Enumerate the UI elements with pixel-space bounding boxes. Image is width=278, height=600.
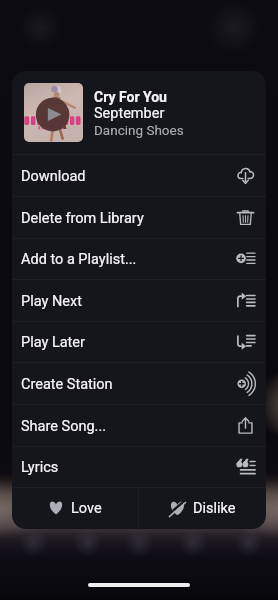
other: Play Later (236, 332, 255, 351)
button[interactable]: Lyrics (12, 446, 266, 487)
button[interactable]: Delete from Library (12, 196, 266, 238)
staticText: Lyrics (21, 459, 59, 476)
button[interactable]: Share Song... (12, 404, 266, 446)
staticText: September (94, 105, 165, 122)
staticText: Delete from Library (21, 210, 144, 227)
staticText: Play Next (21, 293, 82, 310)
staticText: Add to a Playlist... (21, 251, 137, 268)
button[interactable]: Create Station (12, 362, 266, 404)
button[interactable]: Dislike (139, 487, 266, 529)
staticText: Love (71, 500, 102, 517)
button[interactable]: Play Next (12, 279, 266, 321)
staticText: Dancing Shoes (94, 122, 184, 138)
other: Create Station (236, 374, 255, 393)
button[interactable]: Play Later (12, 321, 266, 362)
button[interactable]: Add to a Playlist... (12, 238, 266, 279)
staticText: Share Song... (21, 418, 107, 435)
other: Add to a Playlist (236, 249, 255, 268)
other: Lyrics (236, 457, 255, 476)
staticText: Dislike (193, 500, 236, 517)
button[interactable]: Love (12, 487, 138, 529)
staticText: Download (21, 168, 86, 185)
staticText: Cry For You (94, 89, 167, 105)
other: Play Next (236, 291, 255, 310)
staticText: Create Station (21, 376, 113, 393)
staticText: Play Later (21, 334, 85, 351)
button[interactable]: Download (12, 154, 266, 196)
other: Download (236, 166, 255, 185)
other: Share Song (236, 416, 255, 435)
other: Delete from Library (236, 208, 255, 227)
